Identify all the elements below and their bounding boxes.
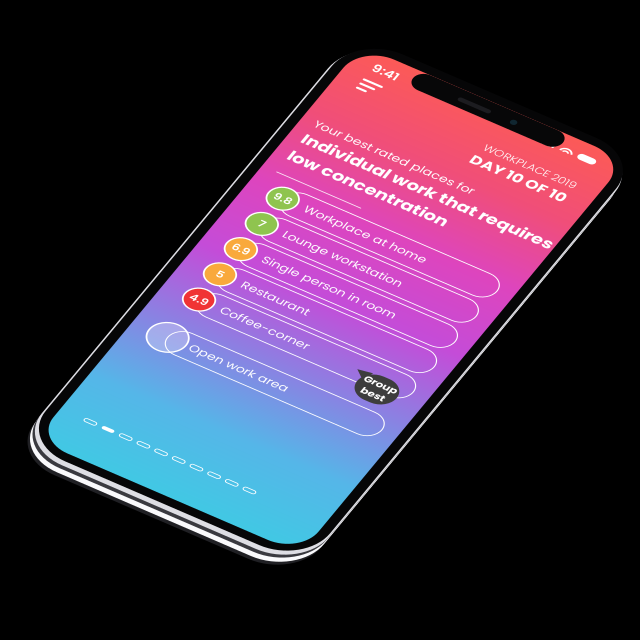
staticText: Coffee-corner [96,495,220,520]
staticText: DAY 10 OF 10 [226,100,360,130]
button[interactable]: 5 [45,434,368,478]
staticText: WORKPLACE 2019 [230,77,360,100]
staticText: 5 [60,444,70,467]
staticText: low concentration [33,212,257,245]
staticText: Workplace at home [96,287,268,312]
staticText: Lounge workstation [96,339,263,364]
staticText: best [312,527,345,548]
staticText: Single person in room [96,391,284,416]
button[interactable]: 4.9 [45,486,368,530]
button[interactable]: 7 [45,330,368,374]
button[interactable]: 6.9 [45,382,368,426]
staticText: Group [305,508,351,528]
staticText: Restaurant [96,443,191,468]
staticText: Individual work that requires [33,177,386,211]
staticText: 6.9 [53,392,77,415]
button[interactable]: 9.8 [45,278,368,322]
staticText: Your best rated places for [33,152,258,176]
